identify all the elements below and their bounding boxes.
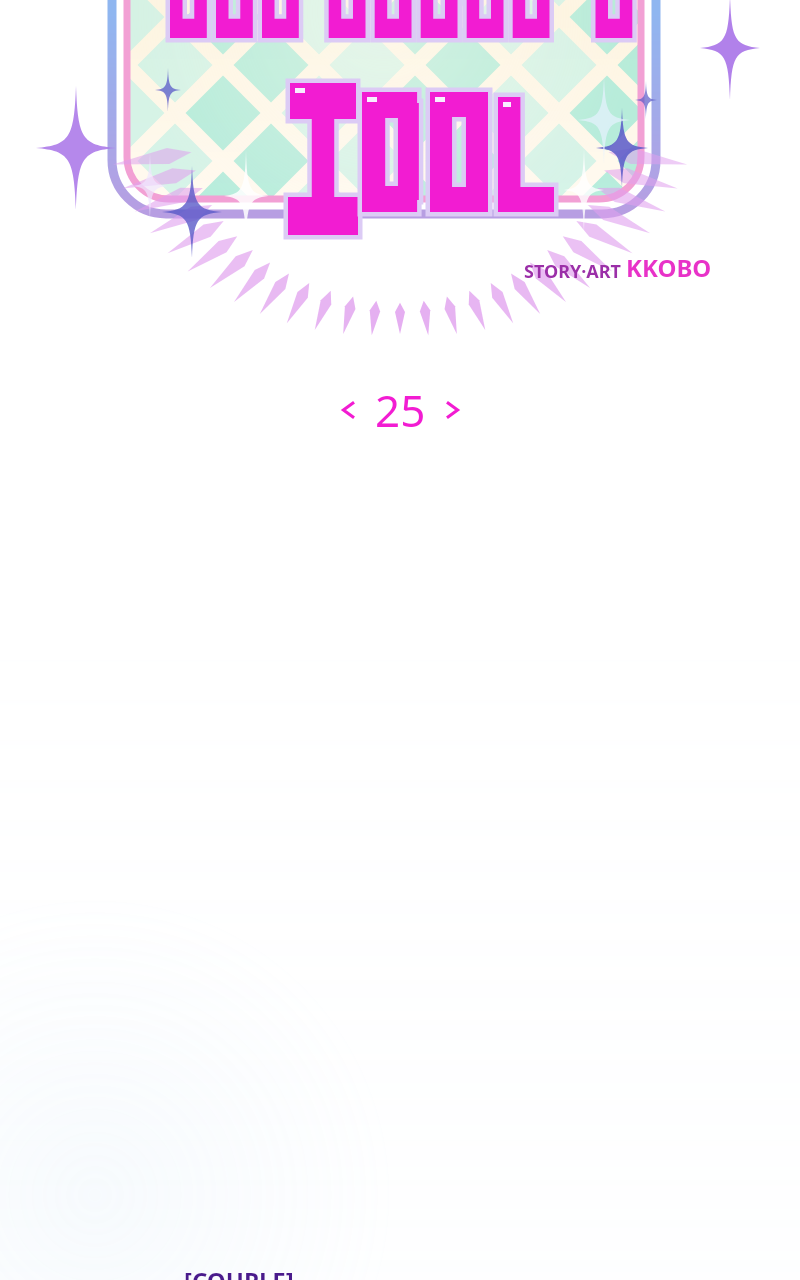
- button[interactable]: Next episode: [428, 386, 476, 434]
- button[interactable]: Previous episode: [325, 386, 373, 434]
- button[interactable]: 25: [373, 380, 428, 440]
- staticText: 25: [375, 380, 426, 440]
- staticText: KKOBO: [626, 251, 712, 284]
- staticText: [COUPLE]: [184, 1264, 294, 1280]
- staticText: STORY·ART: [524, 259, 626, 284]
